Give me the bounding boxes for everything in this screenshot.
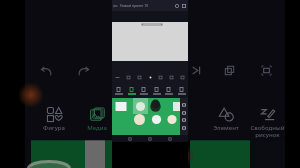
button[interactable]: Свободный рисунок [242, 107, 292, 139]
button[interactable]: Transform [256, 60, 276, 80]
button[interactable]: Duplicate layer [219, 60, 239, 80]
staticText: Медиа [87, 124, 107, 132]
button[interactable]: Фигура [29, 107, 79, 132]
staticText: Свободный рисунок [250, 124, 285, 139]
staticText: Элемент [213, 124, 239, 132]
button[interactable]: Skip to end [186, 60, 206, 80]
button[interactable]: Undo [36, 60, 56, 80]
button[interactable]: Redo [73, 60, 93, 80]
button[interactable]: Медиа [72, 107, 122, 132]
staticText: Новый проект 10 [120, 3, 149, 8]
staticText: Фигура [43, 124, 65, 132]
button[interactable]: Элемент [201, 107, 251, 132]
